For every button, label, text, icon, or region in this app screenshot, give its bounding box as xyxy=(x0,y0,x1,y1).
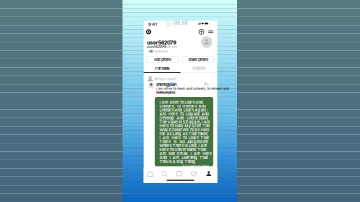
staticText: learn again. xyxy=(156,90,175,94)
staticText: i am alive to learn and unlearn, to rele… xyxy=(156,86,229,95)
button[interactable]: Edit profile xyxy=(147,57,179,63)
button[interactable]: Threads xyxy=(144,66,180,71)
staticText: user562079 xyxy=(147,45,166,49)
button[interactable]: Menu xyxy=(208,30,213,34)
staticText: g y a a n xyxy=(172,26,177,28)
button[interactable]: Share profile xyxy=(182,57,214,63)
button[interactable]: Activity xyxy=(191,171,197,177)
staticText: Edit profile xyxy=(154,57,171,62)
staticText: I Am Alive To Learn And xyxy=(159,100,203,105)
staticText: user562079 xyxy=(147,39,176,46)
staticText: 1 follower xyxy=(153,49,168,53)
staticText: ONLINE xyxy=(172,20,188,26)
staticText: Here To Understand That I xyxy=(159,147,207,152)
button[interactable]: Profile xyxy=(206,171,212,177)
staticText: There Is No Judgement xyxy=(159,139,207,144)
staticText: This Is A Big Thing. xyxy=(159,159,196,164)
button[interactable]: Search xyxy=(161,171,168,177)
staticText: Way It Deserves To Be Held xyxy=(159,127,209,132)
staticText: Unlearn, To Relearn And xyxy=(159,104,206,109)
staticText: Where There Is Love, I Am xyxy=(159,143,207,148)
staticText: G xyxy=(168,23,170,25)
staticText: ··· xyxy=(210,81,213,86)
staticText: 16h xyxy=(204,82,209,86)
staticText: onlinegyaan xyxy=(156,82,176,87)
staticText: threads.net xyxy=(159,45,177,49)
button[interactable]: Home xyxy=(147,171,153,177)
staticText: Here To Hold My Grief The xyxy=(159,123,209,128)
staticText: ✓ xyxy=(171,82,173,85)
staticText: Develop And Understand xyxy=(159,115,208,120)
staticText: What's new? xyxy=(154,77,176,81)
staticText: Replies xyxy=(192,66,205,71)
staticText: I Am Here To Learn That xyxy=(159,135,208,140)
button[interactable]: Create xyxy=(176,171,182,177)
staticText: Threads xyxy=(155,66,170,71)
staticText: Share profile xyxy=(188,57,208,62)
staticText: For As Long As That Takes, xyxy=(159,131,208,136)
button[interactable]: New post xyxy=(199,29,204,34)
staticText: And I Am Learning That xyxy=(159,155,207,160)
button[interactable]: What's new? xyxy=(148,75,214,82)
staticText: Am Here To Unpack And xyxy=(159,112,209,116)
staticText: The Value In Struggle, I Am xyxy=(159,119,210,124)
staticText: Am Not Small, I Am Here xyxy=(159,151,211,156)
staticText: Unlearn And Learn Again, I xyxy=(159,108,208,112)
button[interactable]: Threads xyxy=(146,29,151,34)
staticText: Brianna Pastor xyxy=(182,165,209,169)
button[interactable]: Replies xyxy=(180,66,217,71)
staticText: 9:41 xyxy=(148,22,157,27)
